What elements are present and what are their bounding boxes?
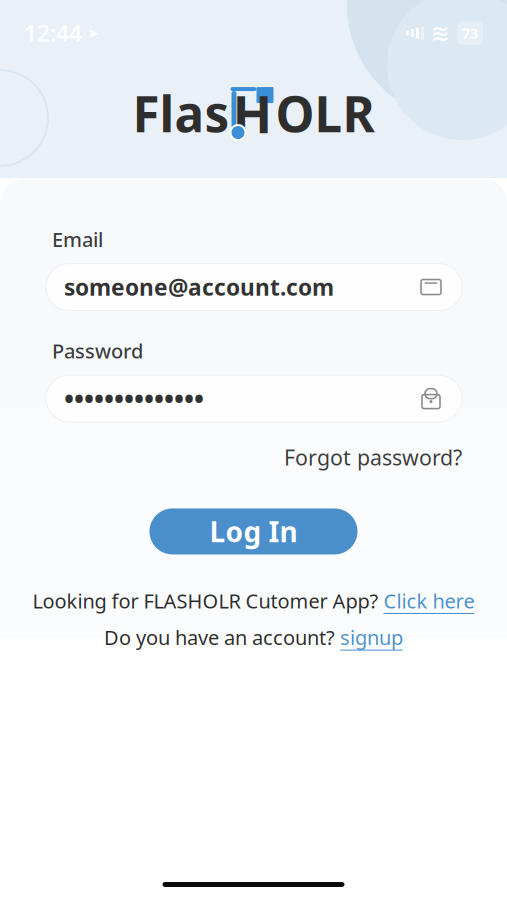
staticText: Do you have an account?	[104, 624, 340, 651]
button[interactable]: Click here	[383, 587, 474, 614]
staticText: ••••••••••••••	[64, 381, 204, 416]
staticText: Email	[52, 226, 103, 253]
staticText: Flas	[132, 80, 229, 146]
staticText: Password	[52, 338, 143, 364]
button[interactable]: Log In	[149, 508, 357, 554]
staticText: signup	[340, 624, 403, 651]
staticText: Click here	[383, 587, 474, 614]
button[interactable]: signup	[340, 624, 403, 651]
staticText: 73	[462, 23, 478, 43]
staticText: Forgot password?	[284, 443, 462, 471]
button[interactable]: Forgot password?	[284, 443, 462, 471]
staticText: ➤	[87, 25, 99, 41]
staticText: OLR	[275, 80, 374, 146]
staticText: ≋	[431, 20, 450, 46]
staticText: H	[232, 78, 272, 148]
staticText: someone@account.com	[64, 272, 334, 302]
staticText: Log In	[209, 513, 297, 550]
staticText: Looking for FLASHOLR Cutomer App?	[32, 587, 383, 614]
staticText: 12:44	[24, 18, 82, 48]
